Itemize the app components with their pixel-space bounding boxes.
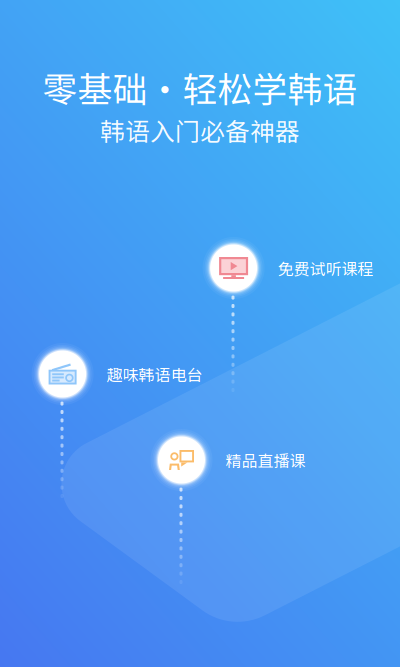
staticText: 免费试听课程 <box>278 256 374 280</box>
button[interactable]: 精品直播课 <box>150 429 305 491</box>
button[interactable]: 趣味韩语电台 <box>32 343 203 405</box>
staticText: 零基础·轻松学韩语 <box>42 62 357 112</box>
button[interactable]: 免费试听课程 <box>203 237 374 299</box>
staticText: 韩语入门必备神器 <box>100 112 300 148</box>
staticText: 趣味韩语电台 <box>107 362 203 386</box>
staticText: 精品直播课 <box>225 448 305 472</box>
